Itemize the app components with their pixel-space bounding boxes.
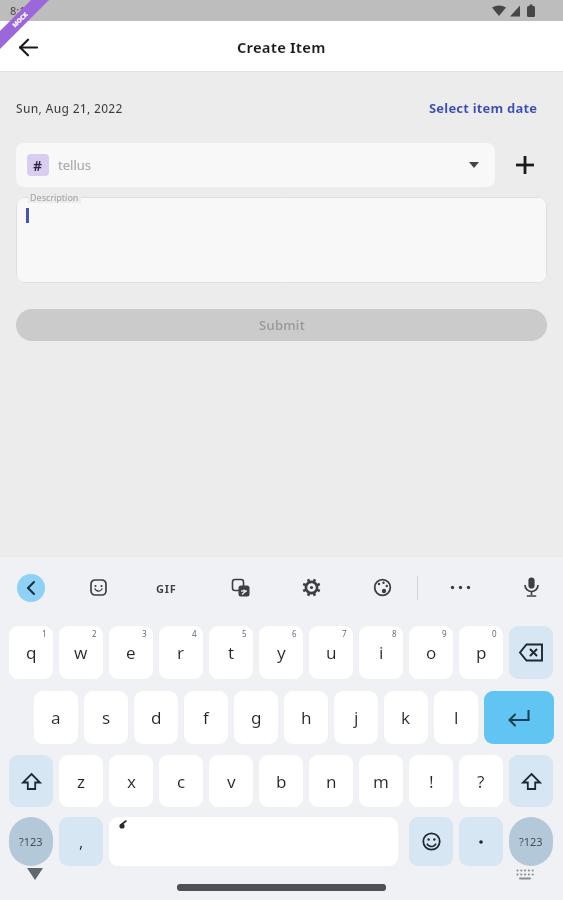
staticText: s xyxy=(102,706,111,729)
button[interactable]: a xyxy=(34,691,78,744)
staticText: f xyxy=(203,706,209,729)
button[interactable]: b xyxy=(259,755,303,807)
button[interactable] xyxy=(8,27,48,67)
staticText: g xyxy=(251,706,262,729)
button[interactable]: c xyxy=(159,755,203,807)
button[interactable] xyxy=(484,691,554,744)
button[interactable]: s xyxy=(84,691,128,744)
staticText: q xyxy=(26,641,37,664)
button[interactable]: ? xyxy=(459,755,503,807)
staticText: ! xyxy=(429,770,434,793)
button[interactable]: d xyxy=(134,691,178,744)
button[interactable]: u xyxy=(309,626,353,679)
staticText: n xyxy=(326,770,337,793)
staticText: d xyxy=(151,706,162,729)
staticText: # xyxy=(33,156,43,175)
button[interactable]: Select item date xyxy=(429,99,538,117)
button[interactable]: ?123 xyxy=(9,817,53,866)
button[interactable]: Submit xyxy=(16,309,547,341)
button[interactable] xyxy=(109,817,398,866)
staticText: 8 xyxy=(392,628,397,639)
button[interactable]: , xyxy=(59,817,103,866)
button[interactable]: n xyxy=(309,755,353,807)
staticText: Select item date xyxy=(429,99,538,117)
staticText: a xyxy=(51,706,61,729)
button[interactable]: w xyxy=(59,626,103,679)
button[interactable]: ?123 xyxy=(509,817,553,866)
button[interactable]: e xyxy=(109,626,153,679)
button[interactable] xyxy=(9,755,53,807)
button[interactable] xyxy=(373,578,392,597)
button[interactable]: v xyxy=(209,755,253,807)
staticText: Sun, Aug 21, 2022 xyxy=(16,100,123,116)
button[interactable]: l xyxy=(434,691,478,744)
staticText: u xyxy=(326,641,337,664)
staticText: Submit xyxy=(259,316,305,334)
staticText: i xyxy=(379,641,384,664)
staticText: 5 xyxy=(242,628,247,639)
button[interactable]: m xyxy=(359,755,403,807)
staticText: v xyxy=(227,770,236,793)
button[interactable]: g xyxy=(234,691,278,744)
staticText: p xyxy=(476,641,487,664)
staticText: 0 xyxy=(492,628,497,639)
staticText: c xyxy=(177,770,186,793)
button[interactable]: # xyxy=(16,143,495,187)
button[interactable]: h xyxy=(284,691,328,744)
staticText: ?123 xyxy=(19,834,43,849)
button[interactable] xyxy=(450,585,471,590)
staticText: Description xyxy=(30,191,79,203)
staticText: tellus xyxy=(58,156,91,174)
staticText: k xyxy=(401,706,411,729)
staticText: 7 xyxy=(342,628,347,639)
button[interactable]: z xyxy=(59,755,103,807)
button[interactable]: t xyxy=(209,626,253,679)
staticText: o xyxy=(426,641,437,664)
button[interactable]: x xyxy=(109,755,153,807)
button[interactable] xyxy=(16,197,547,283)
staticText: e xyxy=(126,641,136,664)
staticText: 1 xyxy=(42,628,47,639)
button[interactable]: q xyxy=(9,626,53,679)
button[interactable] xyxy=(523,577,540,599)
staticText: 6 xyxy=(292,628,297,639)
staticText: t xyxy=(228,641,235,664)
staticText: m xyxy=(373,770,389,793)
staticText: 2 xyxy=(92,628,97,639)
button[interactable] xyxy=(232,579,250,597)
staticText: GIF xyxy=(156,581,177,596)
staticText: l xyxy=(454,706,459,729)
button[interactable] xyxy=(509,755,553,807)
button[interactable] xyxy=(509,626,553,679)
staticText: 3 xyxy=(142,628,147,639)
button[interactable]: o xyxy=(409,626,453,679)
staticText: h xyxy=(301,706,312,729)
button[interactable] xyxy=(409,817,453,866)
button[interactable]: k xyxy=(384,691,428,744)
staticText: j xyxy=(354,706,359,729)
button[interactable] xyxy=(90,579,108,597)
staticText: y xyxy=(277,641,286,664)
button[interactable]: j xyxy=(334,691,378,744)
staticText: w xyxy=(74,641,88,664)
button[interactable]: GIF xyxy=(156,581,177,596)
staticText: z xyxy=(77,770,85,793)
staticText: , xyxy=(79,831,84,853)
button[interactable] xyxy=(459,817,503,866)
button[interactable]: r xyxy=(159,626,203,679)
button[interactable]: i xyxy=(359,626,403,679)
button[interactable]: y xyxy=(259,626,303,679)
staticText: ?123 xyxy=(519,834,543,849)
staticText: Create Item xyxy=(237,37,326,57)
button[interactable]: ! xyxy=(409,755,453,807)
button[interactable] xyxy=(17,574,45,602)
staticText: x xyxy=(127,770,136,793)
button[interactable]: f xyxy=(184,691,228,744)
staticText: b xyxy=(276,770,287,793)
button[interactable] xyxy=(503,143,547,187)
button[interactable]: p xyxy=(459,626,503,679)
staticText: 8:12 xyxy=(10,3,32,18)
staticText: 4 xyxy=(192,628,197,639)
staticText: r xyxy=(177,641,185,664)
button[interactable] xyxy=(302,578,321,597)
